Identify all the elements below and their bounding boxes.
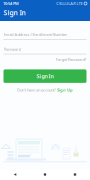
staticText: Sign In bbox=[3, 8, 25, 17]
staticText: CELLULAR bbox=[56, 1, 75, 6]
staticText: Forgot Password? bbox=[55, 57, 86, 62]
button[interactable]: Recents bbox=[60, 169, 90, 180]
staticText: 10:54 PM bbox=[3, 1, 19, 6]
button[interactable]: Back bbox=[0, 169, 30, 180]
staticText: Sign Up bbox=[57, 87, 73, 92]
staticText: Don't have an account? bbox=[17, 87, 56, 92]
staticText: Email Address / Enrollment Number bbox=[3, 32, 67, 37]
staticText: Sign In bbox=[36, 73, 53, 80]
button[interactable]: Forgot Password? bbox=[0, 56, 90, 62]
button[interactable]: Home bbox=[30, 169, 60, 180]
button[interactable]: Sign In bbox=[3, 69, 86, 83]
staticText: LTE bbox=[77, 1, 83, 6]
button[interactable]: Don't have an account? bbox=[0, 87, 90, 93]
staticText: Password bbox=[3, 46, 20, 52]
